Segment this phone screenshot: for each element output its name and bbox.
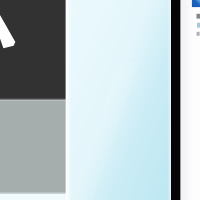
button[interactable]: App screen preview	[0, 0, 200, 200]
